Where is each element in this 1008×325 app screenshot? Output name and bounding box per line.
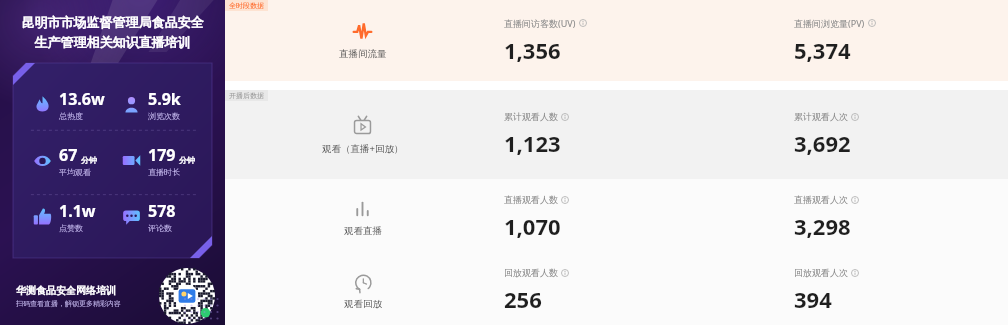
staticText: 扫码查看直播，解锁更多精彩内容 <box>16 299 121 308</box>
button[interactable]: 全时段数据 <box>225 0 1008 81</box>
button[interactable]: QR code <box>159 268 215 324</box>
staticText: 观看回放 <box>344 298 382 310</box>
other: Info <box>561 269 569 277</box>
staticText: 1,356 <box>504 35 561 65</box>
staticText: 1,070 <box>504 211 561 241</box>
staticText: 分钟 <box>179 155 195 165</box>
staticText: 直播间浏览量(PV) <box>794 17 865 29</box>
staticText: 评论数 <box>148 223 172 233</box>
staticText: 点赞数 <box>59 223 83 233</box>
staticText: 华测食品安全网络培训 <box>16 284 116 297</box>
staticText: 平均观看 <box>59 167 91 177</box>
other: Info <box>868 19 876 27</box>
staticText: 5.9k <box>148 88 181 110</box>
staticText: 分钟 <box>81 155 97 165</box>
staticText: 直播时长 <box>148 167 180 177</box>
staticText: 1,123 <box>504 128 561 158</box>
staticText: 578 <box>148 200 176 222</box>
staticText: 直播间流量 <box>339 48 387 60</box>
staticText: 累计观看人数 <box>504 111 558 122</box>
staticText: 3,298 <box>794 211 851 241</box>
staticText: 昆明市市场监督管理局食品安全 <box>0 14 225 30</box>
staticText: 累计观看人次 <box>794 111 848 122</box>
button[interactable]: 13.6w <box>13 63 212 258</box>
staticText: 直播间访客数(UV) <box>504 17 576 29</box>
other: Info <box>579 19 587 27</box>
staticText: 观看直播 <box>344 225 382 237</box>
staticText: 256 <box>504 284 542 314</box>
staticText: 开播后数据 <box>229 91 264 100</box>
staticText: 394 <box>794 284 832 314</box>
staticText: 观看（直播+回放） <box>322 142 404 155</box>
staticText: 直播观看人数 <box>504 194 558 205</box>
staticText: 回放观看人数 <box>504 267 558 278</box>
other: Info <box>851 113 859 121</box>
other: Info <box>561 113 569 121</box>
staticText: 生产管理相关知识直播培训 <box>0 34 225 50</box>
staticText: 67 <box>59 144 78 166</box>
other: Info <box>561 196 569 204</box>
button[interactable]: 观看直播 <box>225 179 1008 256</box>
staticText: 5,374 <box>794 35 851 65</box>
other: Info <box>851 196 859 204</box>
staticText: 全时段数据 <box>229 1 264 10</box>
staticText: 3,692 <box>794 128 851 158</box>
staticText: 179 <box>148 144 176 166</box>
button[interactable]: 开播后数据 <box>225 90 1008 179</box>
staticText: 13.6w <box>59 88 105 110</box>
other: Info <box>851 269 859 277</box>
staticText: 总热度 <box>59 111 83 121</box>
staticText: 直播观看人次 <box>794 194 848 205</box>
staticText: 1.1w <box>59 200 96 222</box>
staticText: 回放观看人次 <box>794 267 848 278</box>
staticText: 浏览次数 <box>148 111 180 121</box>
button[interactable]: 观看回放 <box>225 256 1008 325</box>
